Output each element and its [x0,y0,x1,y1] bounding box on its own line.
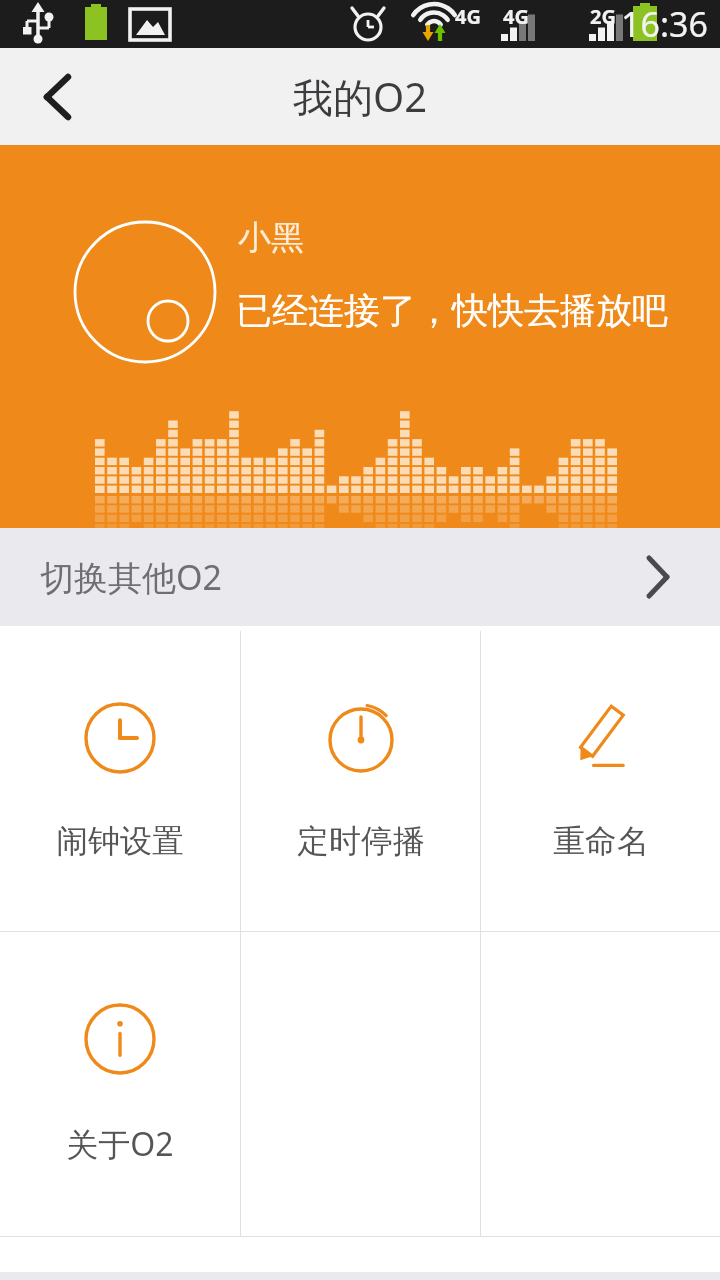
staticText: 重命名 [553,821,649,861]
staticText: 4G [455,3,481,30]
staticText: 关于O2 [66,1122,174,1166]
staticText: 2G [590,3,616,30]
button[interactable]: Back [8,51,100,143]
staticText: 已经连接了，快快去播放吧 [236,288,668,333]
button[interactable]: 闹钟设置 [0,631,240,931]
button[interactable]: 重命名 [481,631,720,931]
staticText: 4G [503,3,529,30]
button[interactable]: 定时停播 [241,631,480,931]
staticText: 16:36 [621,1,708,47]
staticText: 切换其他O2 [40,554,223,600]
button[interactable]: 切换其他O2 [0,528,720,626]
staticText: 小黑 [238,217,304,259]
staticText: 我的O2 [293,69,428,124]
button[interactable]: 关于O2 [0,932,240,1236]
staticText: 定时停播 [297,821,425,861]
staticText: 闹钟设置 [56,821,184,861]
